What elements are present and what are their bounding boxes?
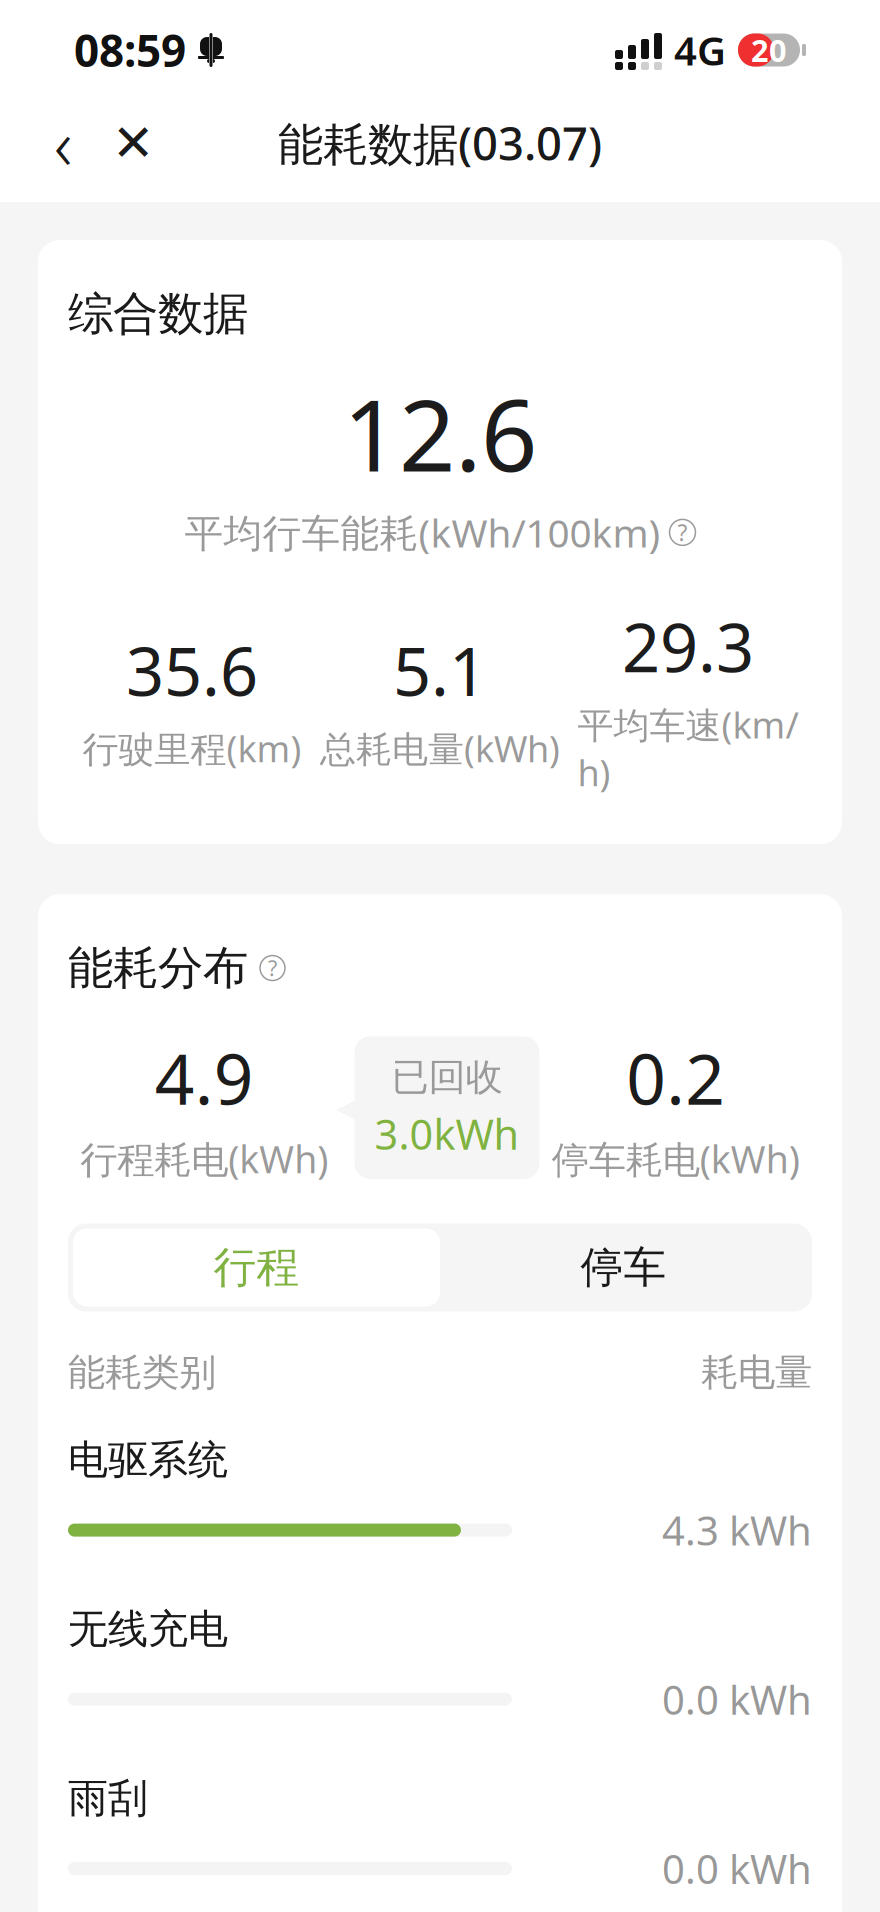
staticText: 0.0 kWh	[662, 1673, 812, 1726]
staticText: 29.3	[622, 602, 754, 691]
staticText: 已回收	[391, 1054, 502, 1100]
staticText: 无线充电	[68, 1605, 228, 1654]
staticText: 能耗类别	[68, 1349, 216, 1395]
staticText: 平均行车能耗(kWh/100km)	[184, 507, 660, 558]
staticText: 4.9	[155, 1032, 254, 1124]
staticText: 12.6	[343, 368, 537, 499]
staticText: 5.1	[393, 626, 487, 714]
staticText: 平均车速(km/h)	[577, 701, 798, 796]
staticText: 35.6	[126, 626, 258, 714]
staticText: 停车耗电(kWh)	[552, 1134, 800, 1184]
staticText: ?	[677, 517, 687, 547]
staticText: 行驶里程(km)	[82, 724, 301, 772]
staticText: 4.3 kWh	[662, 1503, 812, 1557]
button[interactable]: 停车	[440, 1228, 807, 1306]
staticText: 0.2	[626, 1032, 725, 1124]
button[interactable]: 关于能耗分布	[68, 940, 285, 996]
staticText: 08:59	[74, 21, 186, 79]
button[interactable]: Close	[98, 105, 168, 181]
staticText: 总耗电量(kWh)	[320, 724, 560, 772]
staticText: 行程	[213, 1241, 299, 1294]
staticText: 0.0 kWh	[662, 1842, 812, 1895]
button[interactable]: 行程	[73, 1228, 440, 1306]
staticText: 停车	[580, 1241, 666, 1294]
staticText: 3.0kWh	[374, 1106, 519, 1161]
staticText: 电驱系统	[68, 1435, 228, 1484]
staticText: 能耗分布	[68, 940, 248, 996]
staticText: ✕	[112, 114, 154, 172]
staticText: 4G	[674, 23, 726, 76]
staticText: 行程耗电(kWh)	[80, 1134, 328, 1184]
staticText: 耗电量	[701, 1349, 812, 1395]
staticText: 20	[751, 30, 787, 70]
staticText: ‹	[54, 97, 72, 189]
staticText: 能耗数据(03.07)	[278, 113, 602, 173]
button[interactable]: Back	[28, 105, 98, 181]
staticText: 综合数据	[68, 286, 248, 342]
staticText: ?	[268, 954, 277, 982]
staticText: ◀	[336, 1091, 359, 1124]
staticText: 雨刮	[68, 1774, 148, 1823]
button[interactable]: 关于平均行车能耗	[184, 507, 695, 558]
